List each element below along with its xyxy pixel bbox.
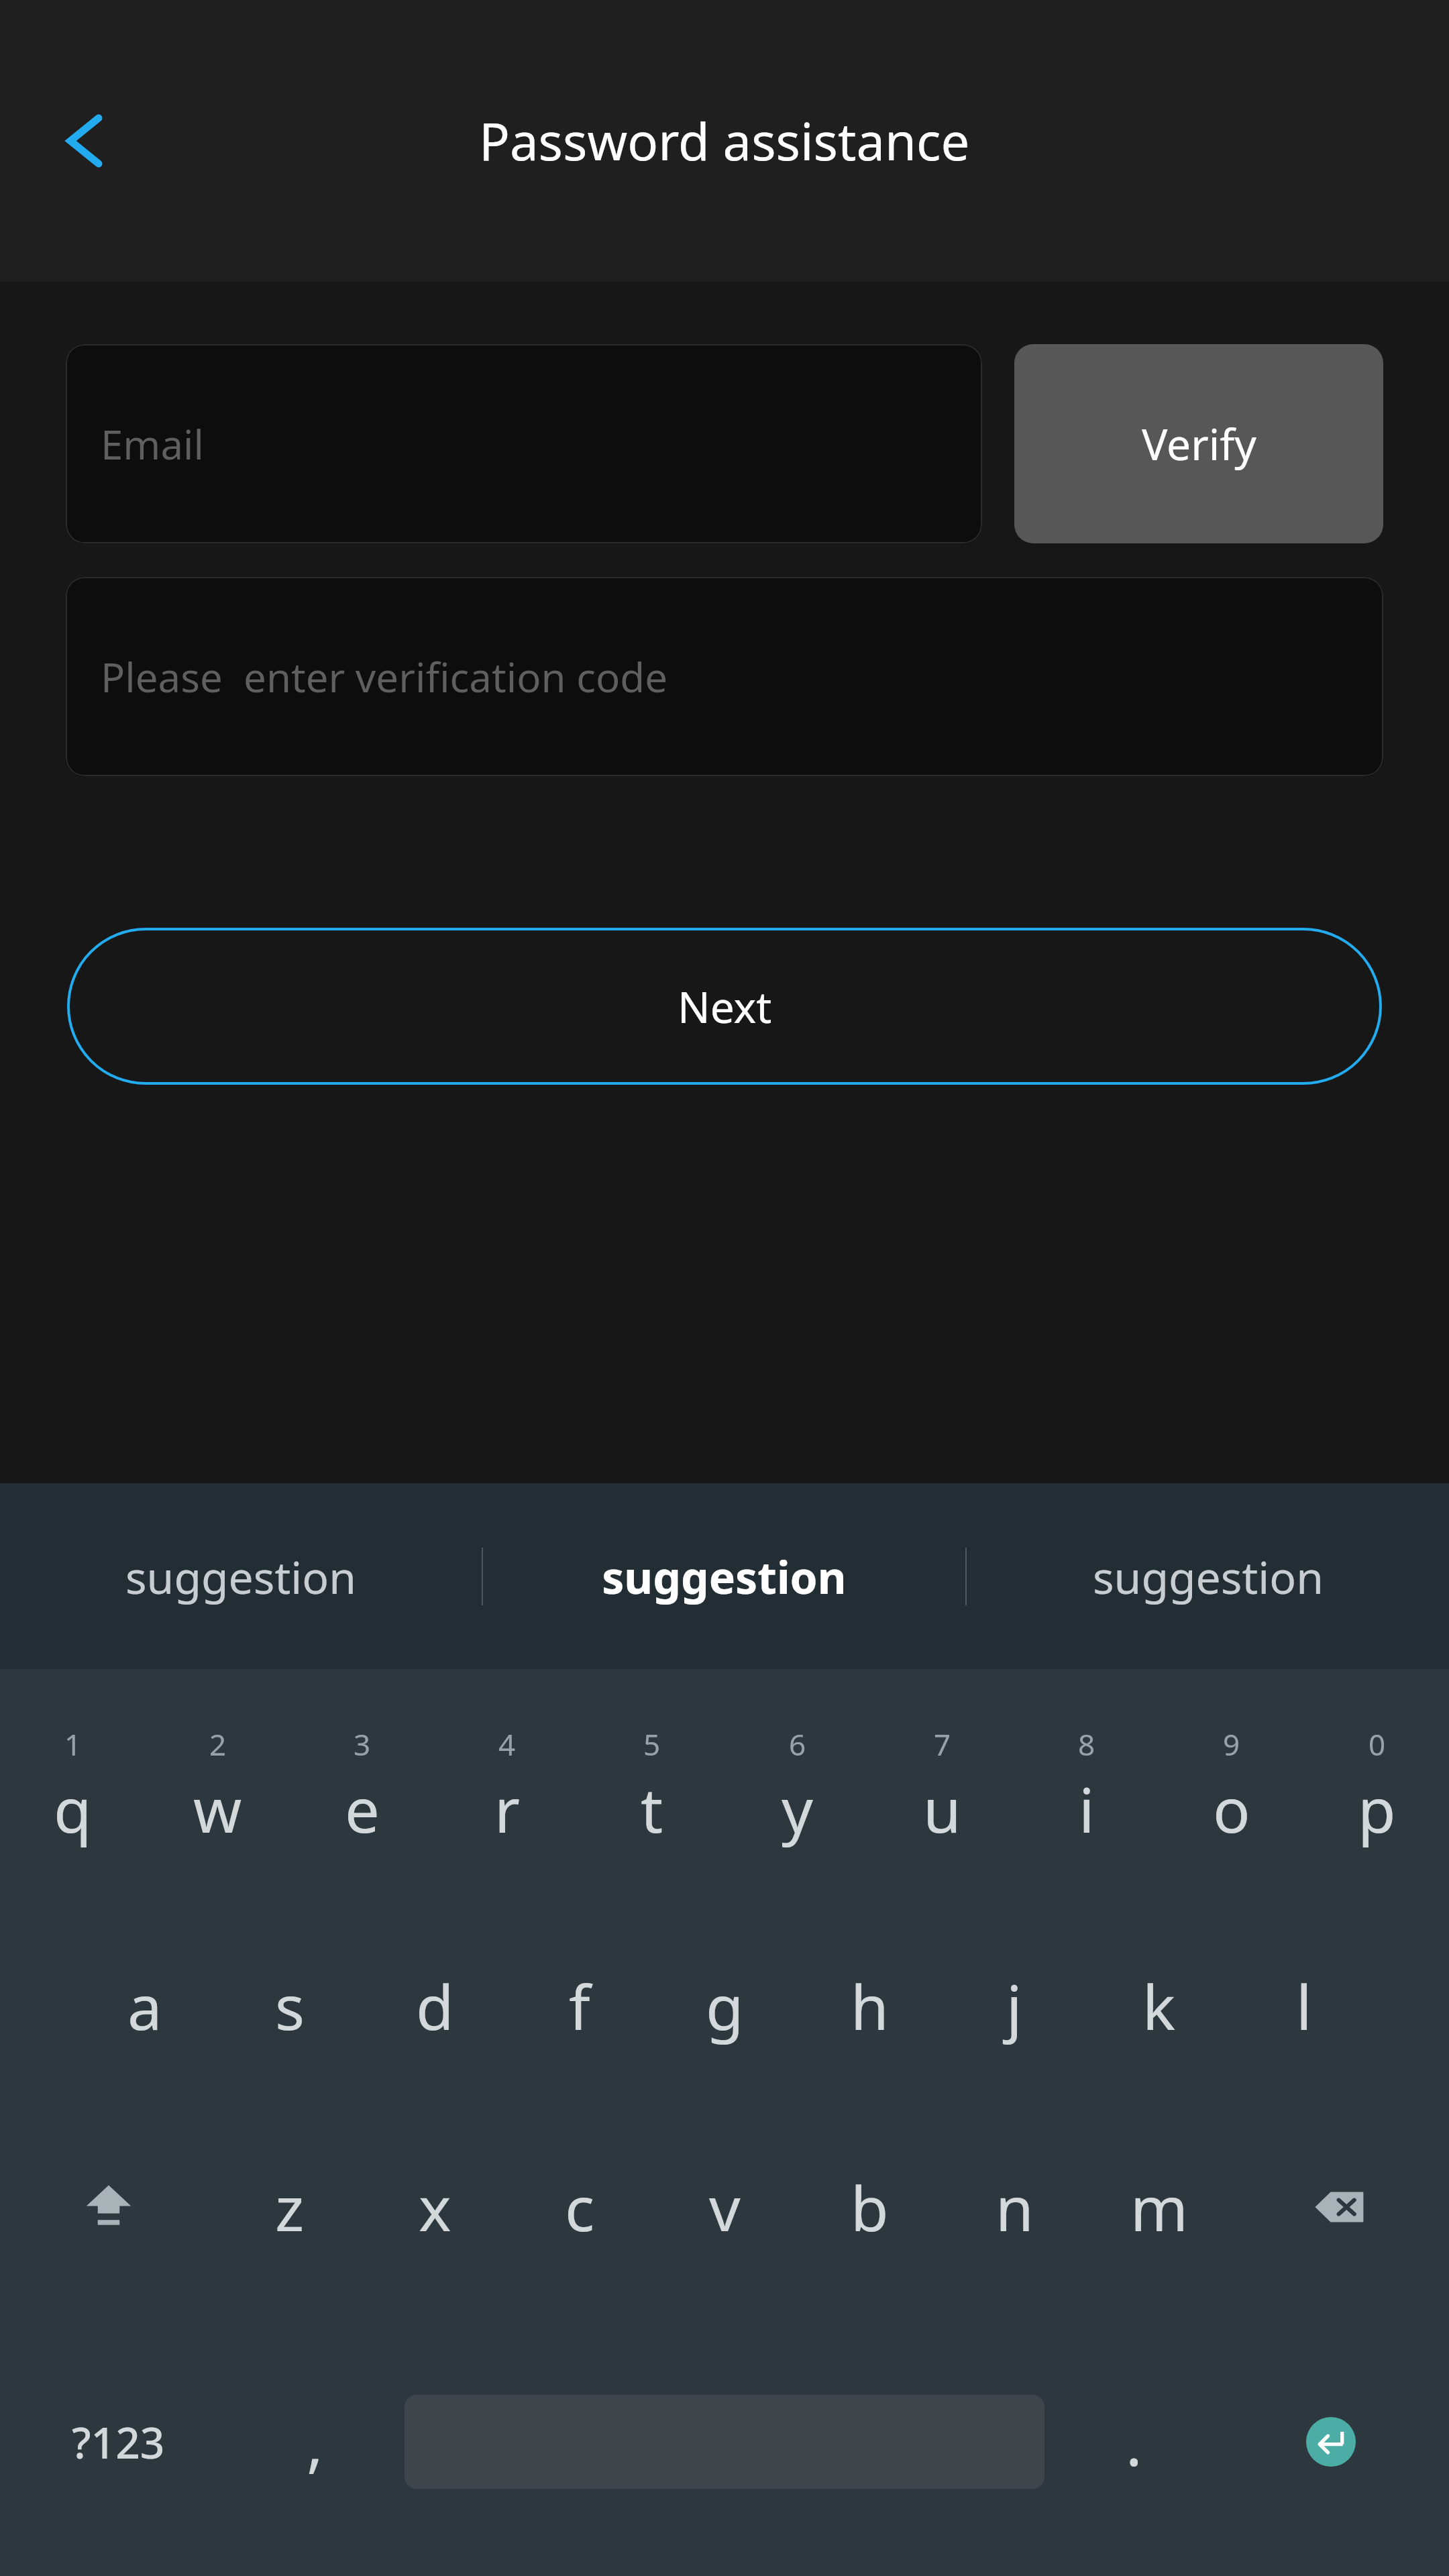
staticText: Next (678, 977, 772, 1036)
staticText: 2 (209, 1724, 227, 1764)
staticText: 6 (789, 1724, 806, 1764)
staticText: . (1126, 2400, 1142, 2484)
button[interactable]: Email (66, 344, 982, 543)
staticText: Please enter verification code (101, 649, 667, 704)
button[interactable]: m (1087, 2106, 1232, 2308)
button[interactable]: 9 (1159, 1669, 1304, 1905)
button[interactable]: 0 (1304, 1669, 1449, 1905)
button[interactable]: 6 (724, 1669, 869, 1905)
button[interactable]: a (72, 1905, 217, 2106)
staticText: z (275, 2165, 305, 2249)
staticText: Email (101, 417, 205, 472)
button[interactable]: Enter (1213, 2308, 1449, 2576)
staticText: t (641, 1767, 663, 1851)
button[interactable]: Please enter verification code (66, 577, 1383, 776)
staticText: m (1130, 2165, 1189, 2249)
staticText: p (1358, 1767, 1396, 1851)
button[interactable]: 3 (290, 1669, 435, 1905)
staticText: h (851, 1964, 889, 2048)
staticText: ?123 (72, 2413, 165, 2471)
button[interactable]: f (507, 1905, 652, 2106)
staticText: x (419, 2165, 451, 2249)
button[interactable]: 4 (435, 1669, 580, 1905)
button[interactable]: Verify (1014, 344, 1383, 543)
staticText: suggestion (125, 1546, 356, 1607)
button[interactable]: ?123 (0, 2308, 236, 2576)
button[interactable]: 2 (145, 1669, 290, 1905)
button[interactable]: l (1232, 1905, 1377, 2106)
staticText: k (1142, 1964, 1176, 2048)
button[interactable]: k (1087, 1905, 1232, 2106)
button[interactable]: d (362, 1905, 507, 2106)
button[interactable]: 7 (869, 1669, 1014, 1905)
button[interactable]: Backspace (1232, 2106, 1449, 2308)
staticText: 4 (498, 1724, 516, 1764)
staticText: , (307, 2400, 323, 2484)
button[interactable]: v (652, 2106, 797, 2308)
staticText: u (923, 1767, 961, 1851)
staticText: 5 (643, 1724, 661, 1764)
button[interactable]: x (362, 2106, 507, 2308)
button[interactable]: , (236, 2308, 394, 2576)
button[interactable]: suggestion (483, 1483, 965, 1669)
staticText: 8 (1078, 1724, 1095, 1764)
staticText: e (345, 1767, 380, 1851)
staticText: i (1079, 1767, 1095, 1851)
staticText: w (193, 1767, 242, 1851)
staticText: d (416, 1964, 454, 2048)
staticText: Password assistance (479, 106, 970, 176)
staticText: r (494, 1767, 520, 1851)
staticText: 0 (1368, 1724, 1386, 1764)
staticText: q (54, 1767, 92, 1851)
button[interactable]: Next (67, 928, 1382, 1085)
staticText: v (709, 2165, 741, 2249)
button[interactable]: 5 (580, 1669, 724, 1905)
button[interactable]: Back (35, 91, 136, 191)
staticText: s (275, 1964, 305, 2048)
staticText: suggestion (602, 1546, 847, 1607)
button[interactable]: g (652, 1905, 797, 2106)
button[interactable]: . (1055, 2308, 1213, 2576)
button[interactable]: Shift (0, 2106, 217, 2308)
button[interactable]: b (797, 2106, 942, 2308)
button[interactable]: suggestion (967, 1483, 1449, 1669)
staticText: suggestion (1093, 1546, 1324, 1607)
button[interactable]: h (797, 1905, 942, 2106)
staticText: b (851, 2165, 889, 2249)
button[interactable]: j (942, 1905, 1087, 2106)
button[interactable]: suggestion (0, 1483, 482, 1669)
staticText: a (127, 1964, 162, 2048)
staticText: 9 (1223, 1724, 1240, 1764)
staticText: f (569, 1964, 590, 2048)
staticText: y (782, 1767, 813, 1851)
staticText: n (996, 2165, 1034, 2249)
staticText: g (706, 1964, 744, 2048)
staticText: j (1006, 1964, 1022, 2048)
button[interactable]: n (942, 2106, 1087, 2308)
staticText: 1 (64, 1724, 82, 1764)
button[interactable]: z (217, 2106, 362, 2308)
staticText: c (565, 2165, 595, 2249)
staticText: 3 (354, 1724, 371, 1764)
staticText: Verify (1142, 415, 1256, 473)
staticText: 7 (934, 1724, 951, 1764)
button[interactable]: 1 (0, 1669, 145, 1905)
button[interactable]: c (507, 2106, 652, 2308)
button[interactable]: 8 (1014, 1669, 1159, 1905)
button[interactable]: s (217, 1905, 362, 2106)
staticText: l (1296, 1964, 1312, 2048)
staticText: o (1213, 1767, 1250, 1851)
